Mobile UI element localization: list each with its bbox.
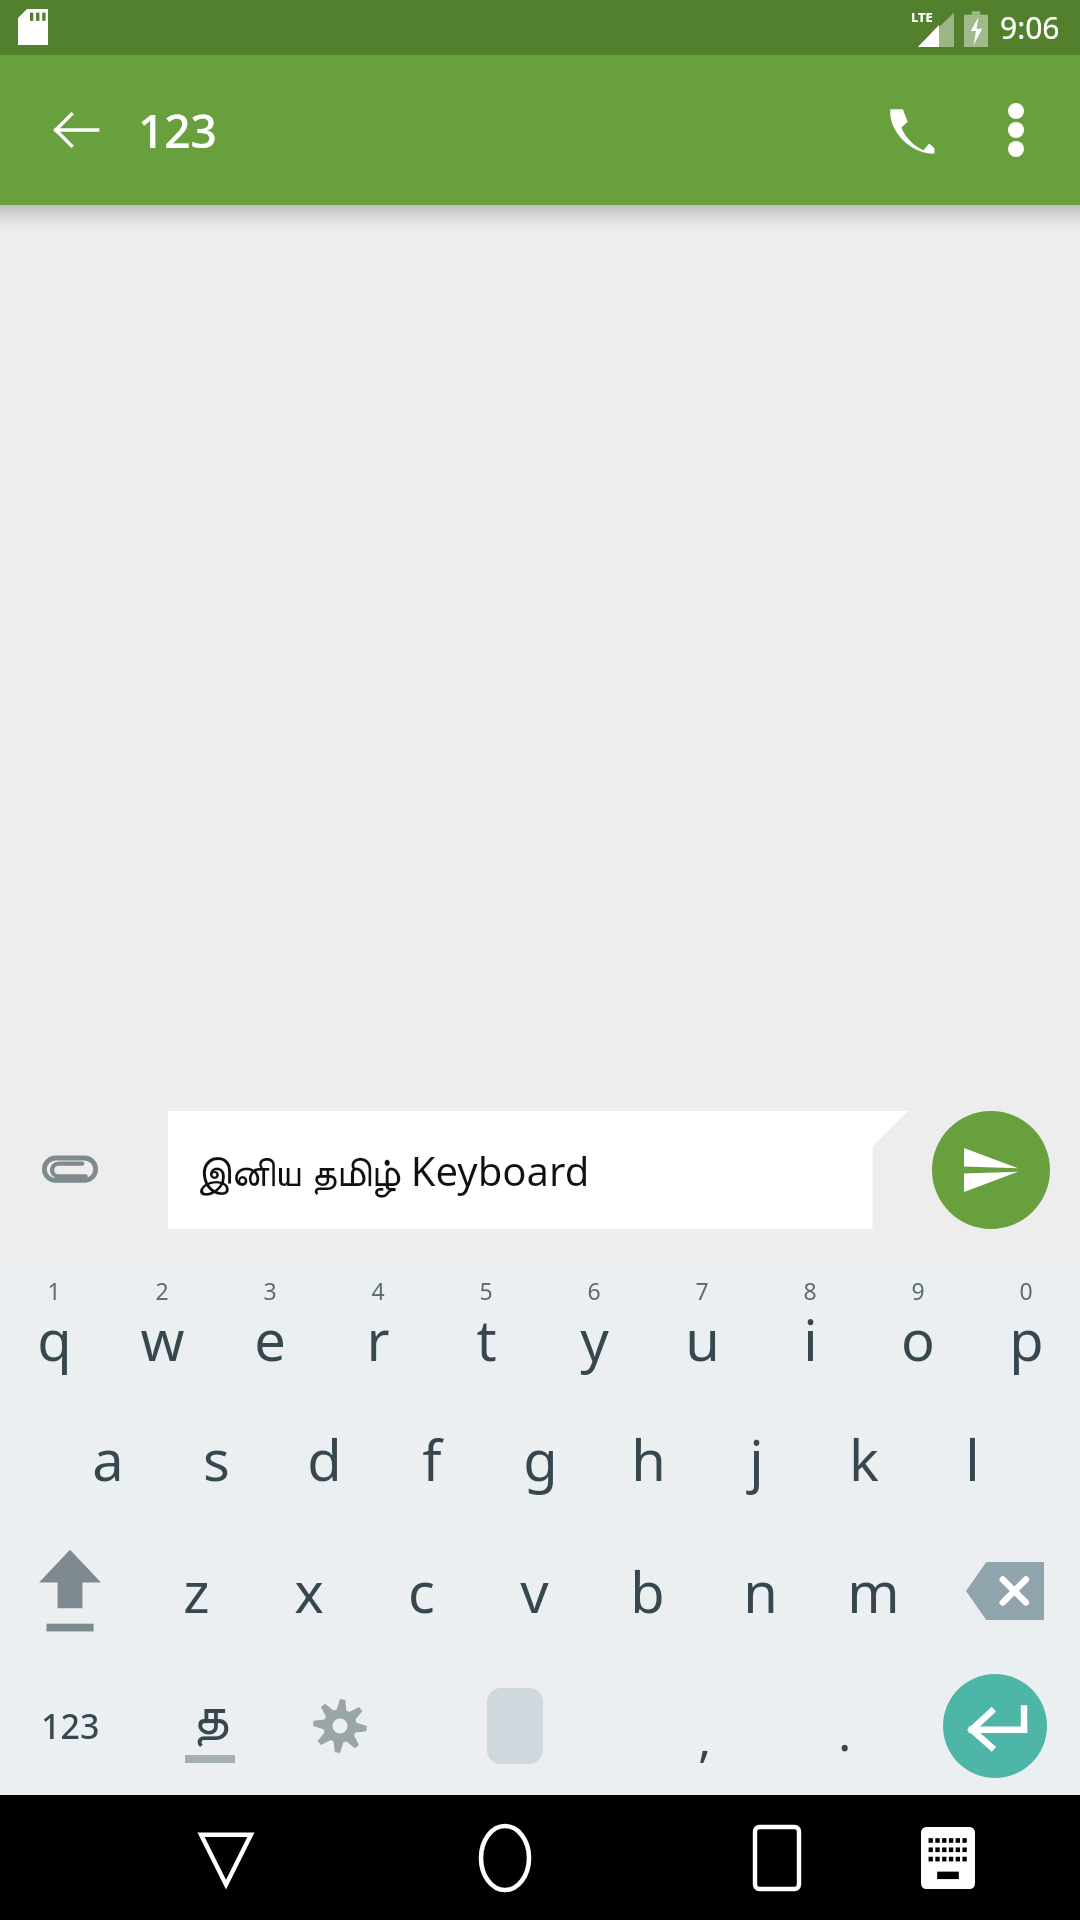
staticText: f: [422, 1421, 442, 1497]
staticText: c: [408, 1553, 435, 1629]
staticText: g: [523, 1421, 558, 1497]
button[interactable]: b: [591, 1525, 704, 1657]
staticText: k: [849, 1421, 879, 1497]
button[interactable]: a: [54, 1393, 162, 1525]
button[interactable]: v: [478, 1525, 591, 1657]
button[interactable]: Back: [166, 1798, 286, 1918]
button[interactable]: x: [252, 1525, 365, 1657]
staticText: n: [743, 1553, 778, 1629]
button[interactable]: g: [486, 1393, 594, 1525]
button[interactable]: 6: [540, 1265, 648, 1393]
staticText: l: [965, 1421, 980, 1497]
button[interactable]: Backspace: [930, 1525, 1080, 1657]
button[interactable]: Tamil layout: [140, 1657, 280, 1795]
staticText: u: [685, 1301, 720, 1377]
staticText: j: [749, 1421, 764, 1497]
button[interactable]: ,: [630, 1657, 780, 1795]
button[interactable]: j: [702, 1393, 810, 1525]
staticText: t: [476, 1301, 497, 1377]
button[interactable]: 4: [324, 1265, 432, 1393]
button[interactable]: Send: [932, 1111, 1050, 1229]
button[interactable]: 123: [0, 1657, 140, 1795]
staticText: 0: [1019, 1275, 1033, 1306]
staticText: ,: [698, 1704, 712, 1772]
button[interactable]: 1: [0, 1265, 108, 1393]
button[interactable]: Settings: [280, 1657, 400, 1795]
button[interactable]: Enter: [943, 1674, 1047, 1778]
button[interactable]: 2: [108, 1265, 216, 1393]
button[interactable]: Back: [0, 82, 96, 178]
button[interactable]: Shift: [0, 1525, 140, 1657]
staticText: z: [183, 1553, 210, 1629]
button[interactable]: Attach: [10, 1110, 130, 1230]
staticText: 123: [138, 99, 217, 162]
button[interactable]: k: [810, 1393, 918, 1525]
staticText: 9:06: [1000, 7, 1060, 48]
button[interactable]: c: [365, 1525, 478, 1657]
staticText: q: [37, 1301, 72, 1377]
button[interactable]: 9: [864, 1265, 972, 1393]
button[interactable]: More options: [966, 80, 1066, 180]
staticText: v: [520, 1553, 549, 1629]
button[interactable]: h: [594, 1393, 702, 1525]
staticText: 123: [41, 1703, 100, 1749]
button[interactable]: இனிய தமிழ் Keyboard: [168, 1111, 908, 1229]
staticText: r: [366, 1301, 390, 1377]
button[interactable]: 0: [972, 1265, 1080, 1393]
staticText: p: [1009, 1301, 1044, 1377]
staticText: e: [254, 1301, 286, 1377]
staticText: w: [140, 1301, 185, 1377]
staticText: 4: [371, 1275, 385, 1306]
staticText: i: [803, 1301, 818, 1377]
staticText: 1: [47, 1275, 61, 1306]
staticText: .: [838, 1698, 852, 1766]
staticText: h: [631, 1421, 666, 1497]
staticText: a: [92, 1421, 124, 1497]
button[interactable]: Recent apps: [717, 1798, 837, 1918]
button[interactable]: d: [270, 1393, 378, 1525]
button[interactable]: n: [704, 1525, 817, 1657]
staticText: s: [203, 1421, 230, 1497]
staticText: LTE: [911, 8, 933, 26]
button[interactable]: m: [817, 1525, 930, 1657]
button[interactable]: Space: [400, 1657, 630, 1795]
staticText: 2: [155, 1275, 169, 1306]
button[interactable]: z: [140, 1525, 252, 1657]
button[interactable]: s: [162, 1393, 270, 1525]
staticText: 5: [479, 1275, 493, 1306]
staticText: x: [294, 1553, 324, 1629]
staticText: 8: [803, 1275, 817, 1306]
staticText: m: [847, 1553, 900, 1629]
staticText: 6: [587, 1275, 601, 1306]
button[interactable]: 8: [756, 1265, 864, 1393]
button[interactable]: Call: [856, 75, 966, 185]
staticText: 9: [911, 1275, 925, 1306]
button[interactable]: f: [378, 1393, 486, 1525]
button[interactable]: l: [918, 1393, 1026, 1525]
button[interactable]: Home: [445, 1798, 565, 1918]
staticText: y: [580, 1301, 609, 1377]
button[interactable]: 7: [648, 1265, 756, 1393]
staticText: b: [630, 1553, 665, 1629]
staticText: 7: [695, 1275, 709, 1306]
staticText: இனிய தமிழ் Keyboard: [196, 1143, 590, 1197]
button[interactable]: .: [780, 1657, 910, 1795]
staticText: d: [307, 1421, 342, 1497]
staticText: 3: [263, 1275, 277, 1306]
button[interactable]: 3: [216, 1265, 324, 1393]
staticText: o: [901, 1301, 935, 1377]
button[interactable]: Switch keyboard: [888, 1798, 1008, 1918]
button[interactable]: 5: [432, 1265, 540, 1393]
staticText: த: [192, 1689, 229, 1745]
